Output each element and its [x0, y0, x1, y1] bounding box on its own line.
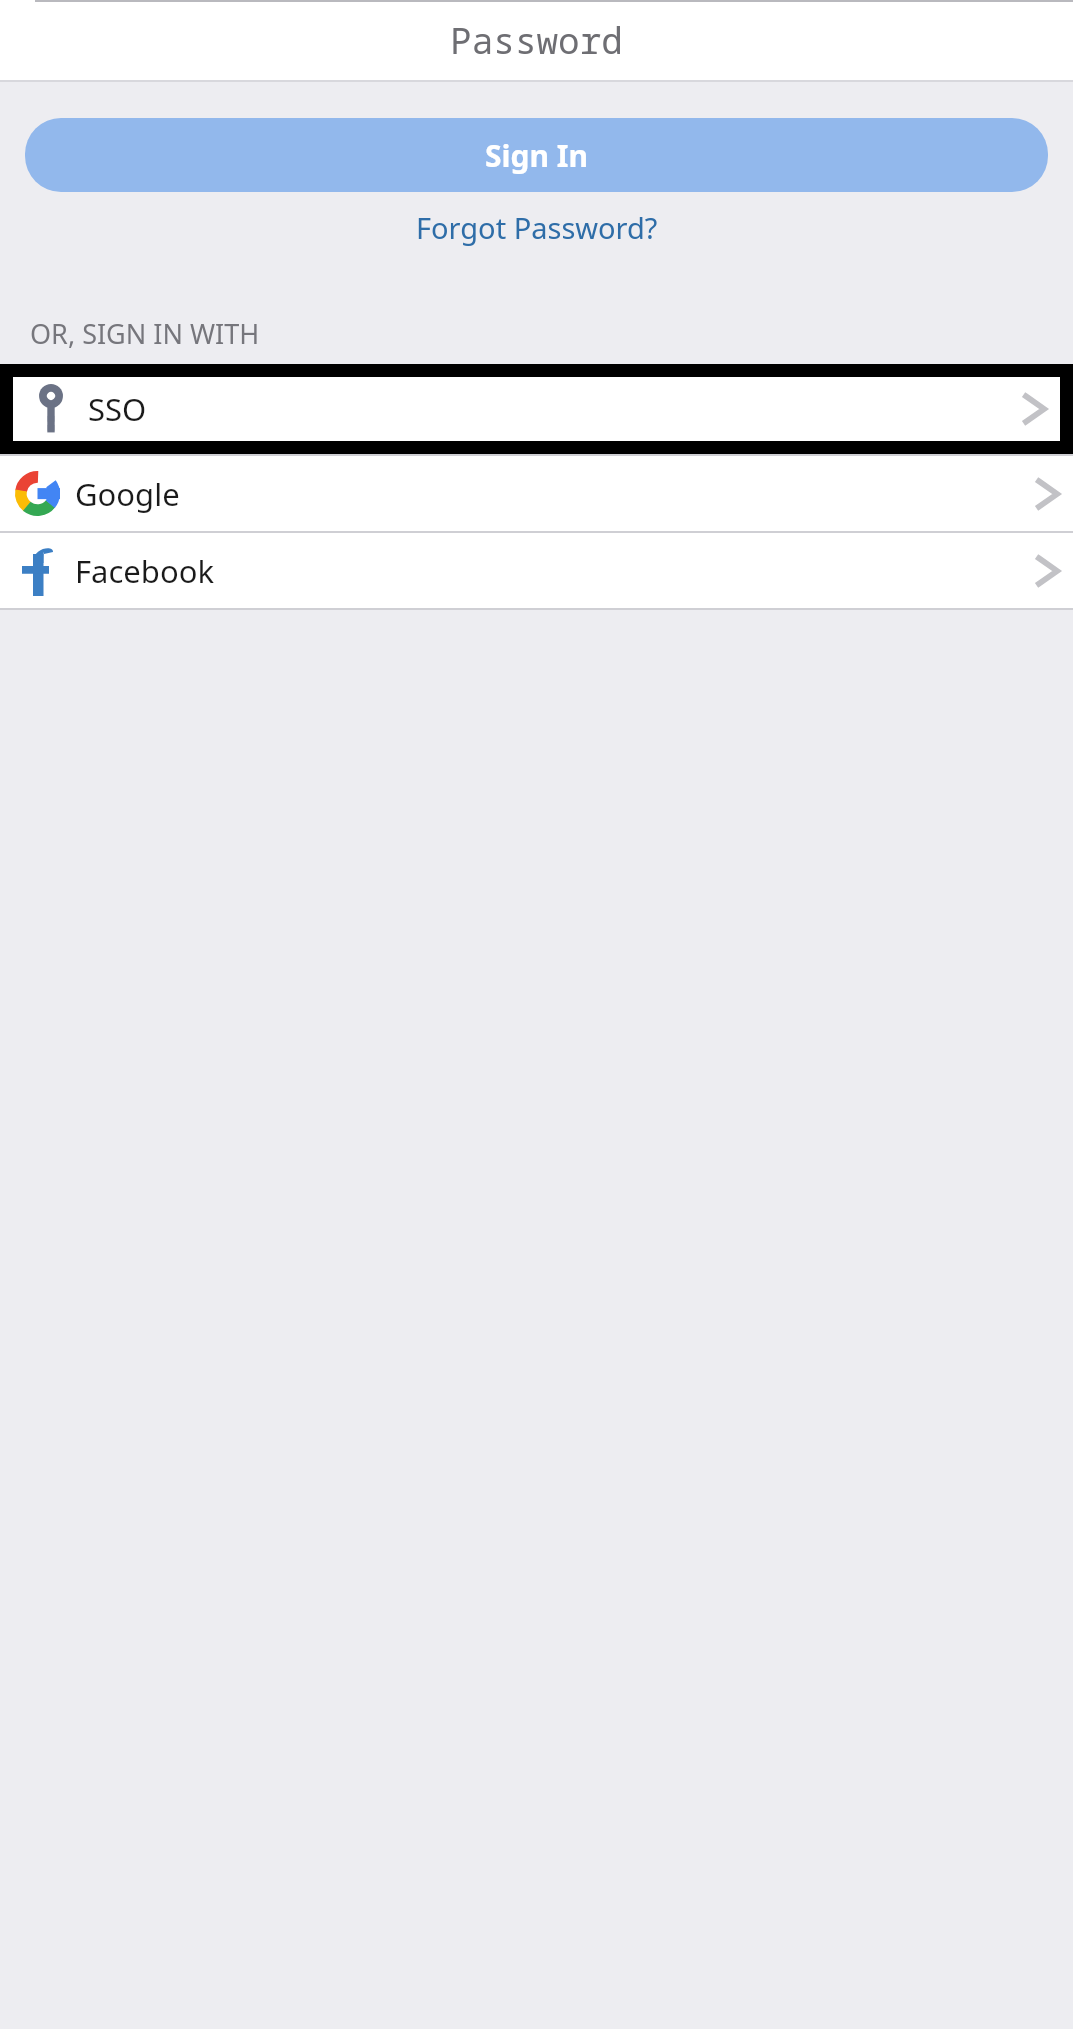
- staticText: Password: [450, 16, 623, 65]
- staticText: Google: [75, 473, 1023, 515]
- staticText: Sign In: [485, 135, 588, 176]
- button[interactable]: Google: [0, 456, 1073, 531]
- staticText: OR, SIGN IN WITH: [30, 315, 260, 352]
- button[interactable]: Forgot Password?: [404, 202, 670, 253]
- staticText: Facebook: [75, 550, 1023, 592]
- button[interactable]: Sign In: [25, 118, 1048, 192]
- staticText: SSO: [88, 388, 1010, 430]
- button[interactable]: Facebook: [0, 533, 1073, 608]
- button[interactable]: SSO: [0, 364, 1073, 454]
- staticText: Forgot Password?: [416, 208, 658, 247]
